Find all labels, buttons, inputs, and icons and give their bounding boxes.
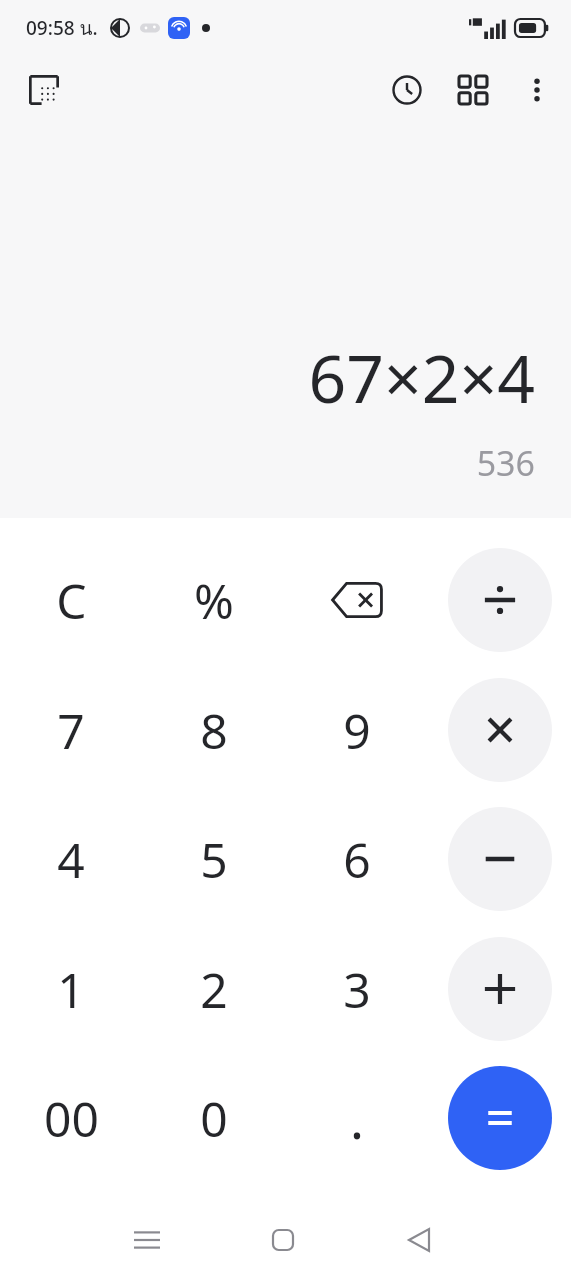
button[interactable]: Scientific mode bbox=[18, 64, 70, 116]
button[interactable]: 5 bbox=[162, 807, 266, 911]
staticText: % bbox=[194, 568, 234, 633]
button[interactable]: Equals bbox=[448, 1066, 552, 1170]
staticText: 8 bbox=[200, 698, 228, 763]
button[interactable]: Recent apps bbox=[117, 1210, 177, 1270]
button[interactable]: C bbox=[19, 548, 123, 652]
staticText: 536 bbox=[476, 440, 535, 486]
staticText: 9 bbox=[343, 698, 371, 763]
button[interactable]: 6 bbox=[305, 807, 409, 911]
button[interactable]: Back bbox=[389, 1210, 449, 1270]
button[interactable]: Plus bbox=[448, 937, 552, 1041]
button[interactable]: 4 bbox=[19, 807, 123, 911]
button[interactable]: . bbox=[305, 1066, 409, 1170]
button[interactable]: 9 bbox=[305, 678, 409, 782]
staticText: 09:58 น. bbox=[26, 13, 98, 43]
staticText: C bbox=[56, 568, 87, 633]
button[interactable]: 0 bbox=[162, 1066, 266, 1170]
button[interactable]: 8 bbox=[162, 678, 266, 782]
staticText: . bbox=[350, 1083, 364, 1154]
staticText: 00 bbox=[44, 1086, 99, 1151]
button[interactable]: More options bbox=[511, 64, 563, 116]
staticText: 5 bbox=[200, 827, 228, 892]
staticText: 1 bbox=[57, 957, 85, 1022]
button[interactable]: Home bbox=[253, 1210, 313, 1270]
staticText: 4 bbox=[57, 827, 85, 892]
button[interactable]: 1 bbox=[19, 937, 123, 1041]
staticText: 0 bbox=[200, 1086, 228, 1151]
button[interactable]: Multiply bbox=[448, 678, 552, 782]
button[interactable]: Minus bbox=[448, 807, 552, 911]
button[interactable]: Divide bbox=[448, 548, 552, 652]
staticText: 6 bbox=[343, 827, 371, 892]
button[interactable]: 3 bbox=[305, 937, 409, 1041]
button[interactable]: % bbox=[162, 548, 266, 652]
button[interactable]: 2 bbox=[162, 937, 266, 1041]
button[interactable]: 7 bbox=[19, 678, 123, 782]
button[interactable]: History bbox=[381, 64, 433, 116]
staticText: 3 bbox=[343, 957, 371, 1022]
button[interactable]: 00 bbox=[19, 1066, 123, 1170]
button[interactable]: Backspace bbox=[305, 548, 409, 652]
button[interactable]: Converters bbox=[447, 64, 499, 116]
staticText: 2 bbox=[200, 957, 228, 1022]
staticText: 7 bbox=[57, 698, 85, 763]
staticText: 67×2×4 bbox=[308, 332, 535, 422]
